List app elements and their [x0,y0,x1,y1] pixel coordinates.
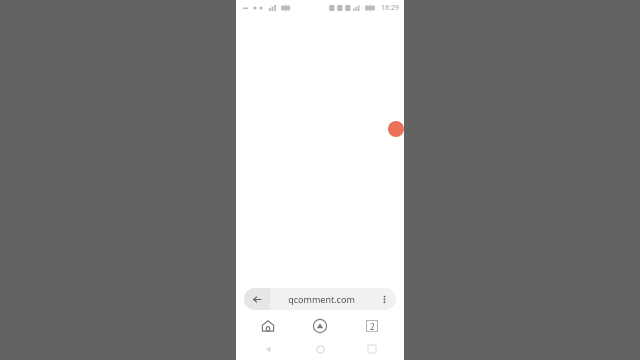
button[interactable]: qcomment.com [270,288,372,310]
button[interactable]: Back [248,338,288,360]
button[interactable]: Home [300,338,340,360]
button[interactable]: Recent apps [352,338,392,360]
staticText: 18:29 [381,3,399,13]
staticText: 2 [370,321,375,332]
button[interactable]: Menu [300,314,340,338]
button[interactable]: More options [372,288,396,310]
button[interactable]: Home [248,314,288,338]
button[interactable]: Back [244,288,270,310]
staticText: qcomment.com [288,293,355,305]
button[interactable]: Tabs [352,314,392,338]
